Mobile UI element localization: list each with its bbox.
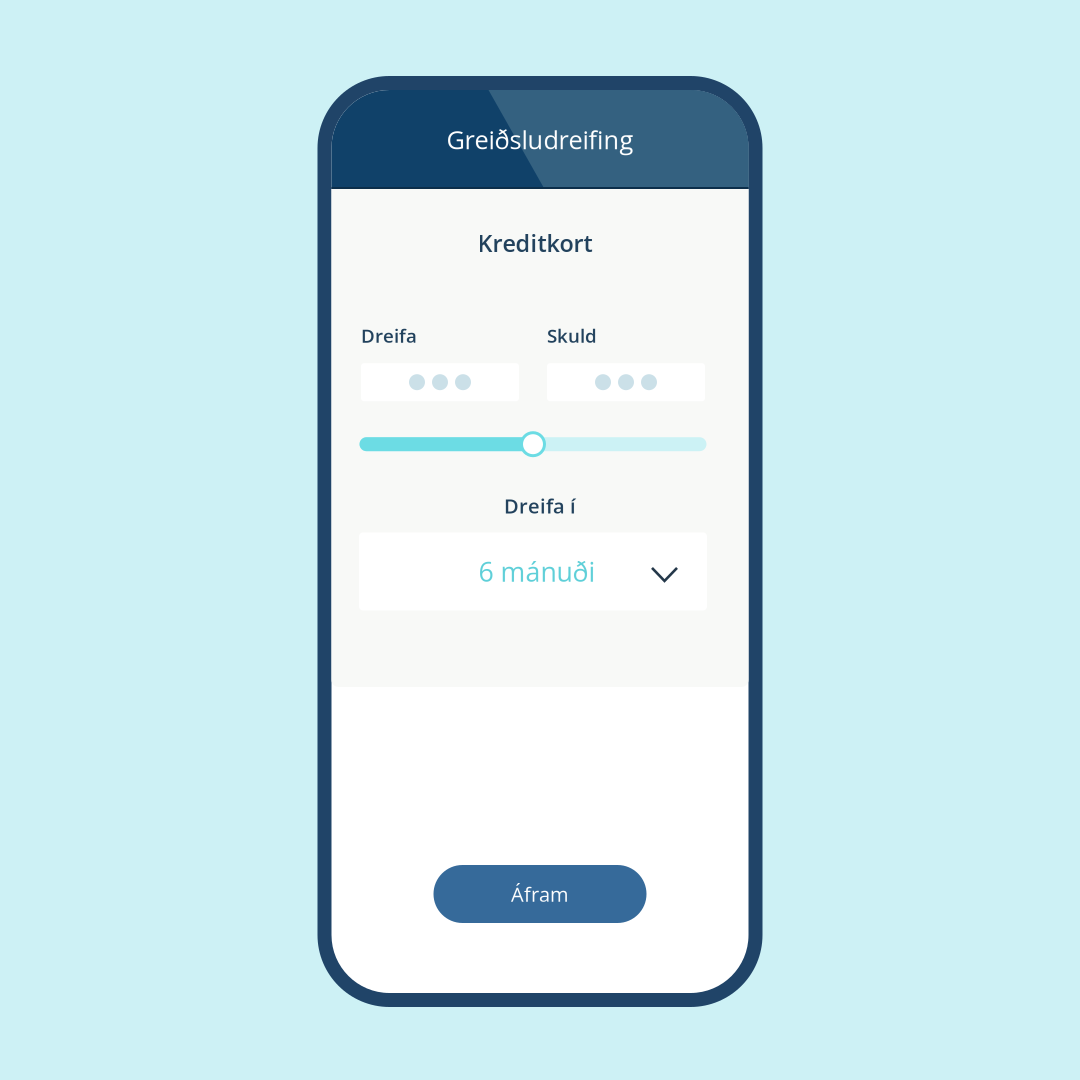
button[interactable]: Dreifa bbox=[361, 363, 519, 401]
staticText: Greiðsludreifing bbox=[446, 122, 633, 157]
button[interactable]: Áfram bbox=[433, 865, 646, 923]
button[interactable]: Skuld bbox=[547, 363, 705, 401]
staticText: Skuld bbox=[547, 323, 597, 348]
staticText: 6 mánuði bbox=[478, 553, 595, 590]
staticText: Áfram bbox=[511, 880, 569, 908]
staticText: Dreifa bbox=[361, 323, 417, 348]
staticText: Kreditkort bbox=[477, 227, 592, 259]
button[interactable]: 6 mánuði bbox=[359, 532, 707, 610]
staticText: Dreifa í bbox=[504, 492, 576, 519]
